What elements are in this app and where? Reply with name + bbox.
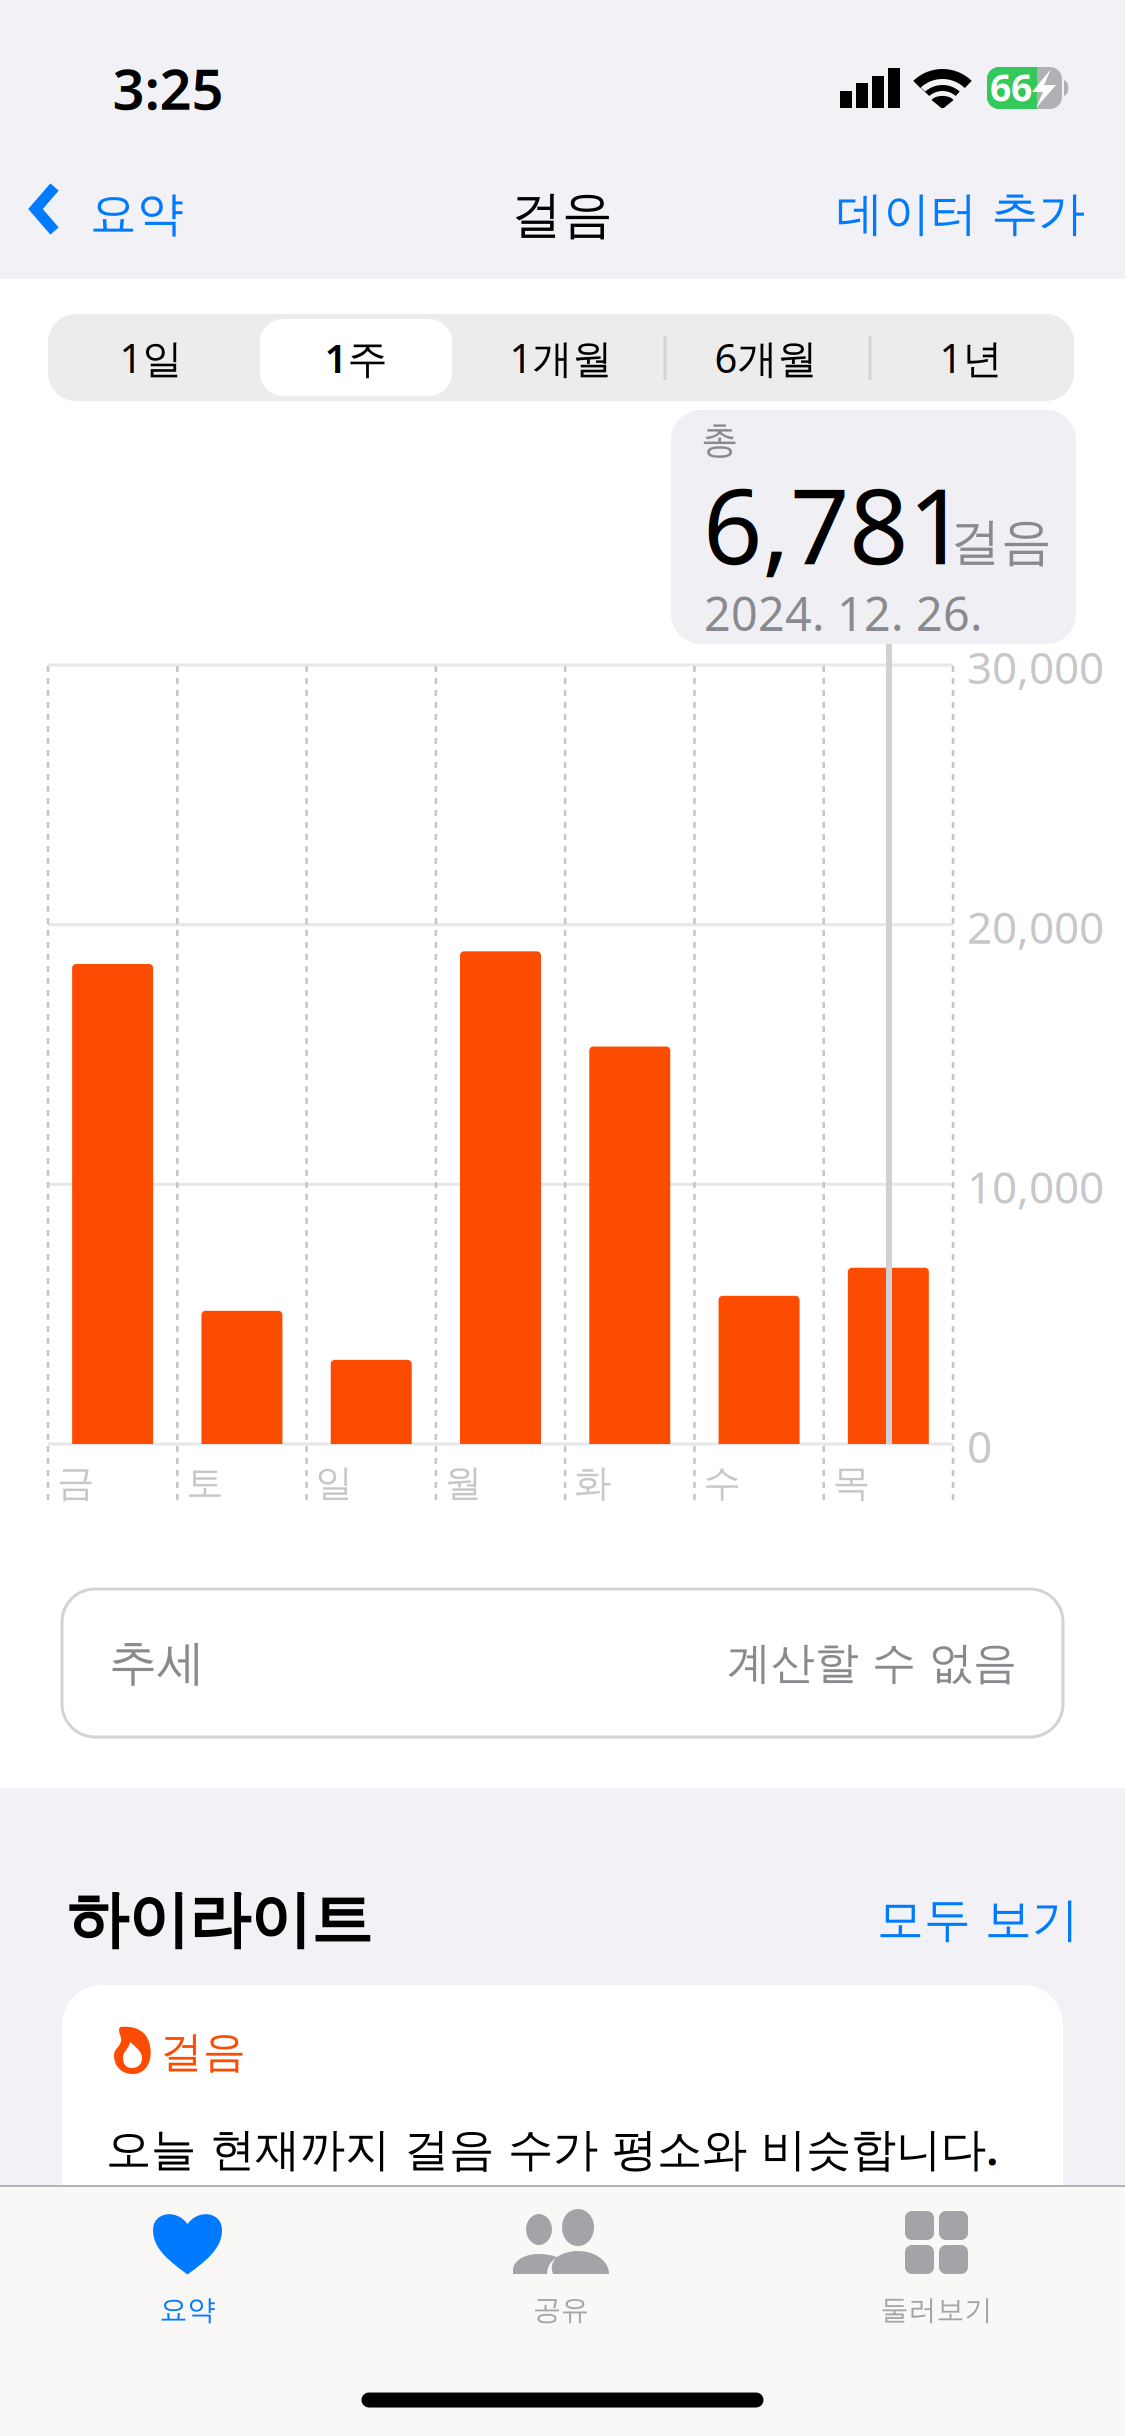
staticText: 걸음 (160, 2026, 246, 2078)
staticText: 6,781 (703, 455, 967, 593)
staticText: 계산할 수 없음 (727, 1636, 1017, 1690)
staticText: 걸음 (511, 184, 613, 246)
button[interactable]: 요약 (0, 2211, 375, 2401)
staticText: 10,000 (967, 1157, 1104, 1215)
staticText: 둘러보기 (880, 2293, 992, 2327)
staticText: 요약 (159, 2293, 215, 2327)
staticText: 총 (701, 417, 738, 463)
staticText: 30,000 (967, 638, 1104, 696)
staticText: 추세 (109, 1633, 205, 1692)
staticText: 2024. 12. 26. (704, 582, 983, 644)
button[interactable]: 둘러보기 (749, 2211, 1124, 2401)
staticText: 1개월 (509, 331, 612, 384)
staticText: 요약 (90, 185, 184, 243)
staticText: 데이터 추가 (836, 185, 1085, 243)
staticText: 1일 (119, 331, 182, 384)
button[interactable]: 1개월 (458, 314, 663, 401)
staticText: 1주 (324, 331, 387, 384)
staticText: 토 (186, 1460, 223, 1506)
staticText: 금 (57, 1460, 94, 1506)
button[interactable]: 데이터 추가 (814, 169, 1107, 259)
staticText: 3:25 (112, 51, 223, 125)
staticText: 1년 (939, 331, 1002, 384)
staticText: 화 (574, 1460, 611, 1506)
button[interactable]: 6개월 (663, 314, 868, 401)
button[interactable]: 1년 (868, 314, 1073, 401)
button[interactable]: 1주 (253, 314, 458, 401)
staticText: 수 (703, 1460, 740, 1506)
staticText: 걸음 (950, 511, 1052, 573)
staticText: 오늘 현재까지 걸음 수가 평소와 비슷합니다. (106, 2118, 999, 2178)
staticText: 모두 보기 (877, 1891, 1079, 1949)
staticText: 하이라이트 (67, 1882, 372, 1958)
staticText: 목 (833, 1460, 870, 1506)
button[interactable]: 요약 (18, 168, 218, 260)
staticText: 0 (967, 1417, 992, 1475)
staticText: 월 (445, 1460, 482, 1506)
button[interactable]: 1일 (48, 314, 253, 401)
staticText: 6개월 (714, 331, 817, 384)
staticText: 일 (316, 1460, 353, 1506)
staticText: 공유 (533, 2293, 589, 2327)
button[interactable]: 공유 (373, 2211, 748, 2401)
button[interactable]: 모두 보기 (861, 1877, 1095, 1963)
staticText: 66 (990, 62, 1032, 112)
staticText: 20,000 (967, 897, 1104, 956)
